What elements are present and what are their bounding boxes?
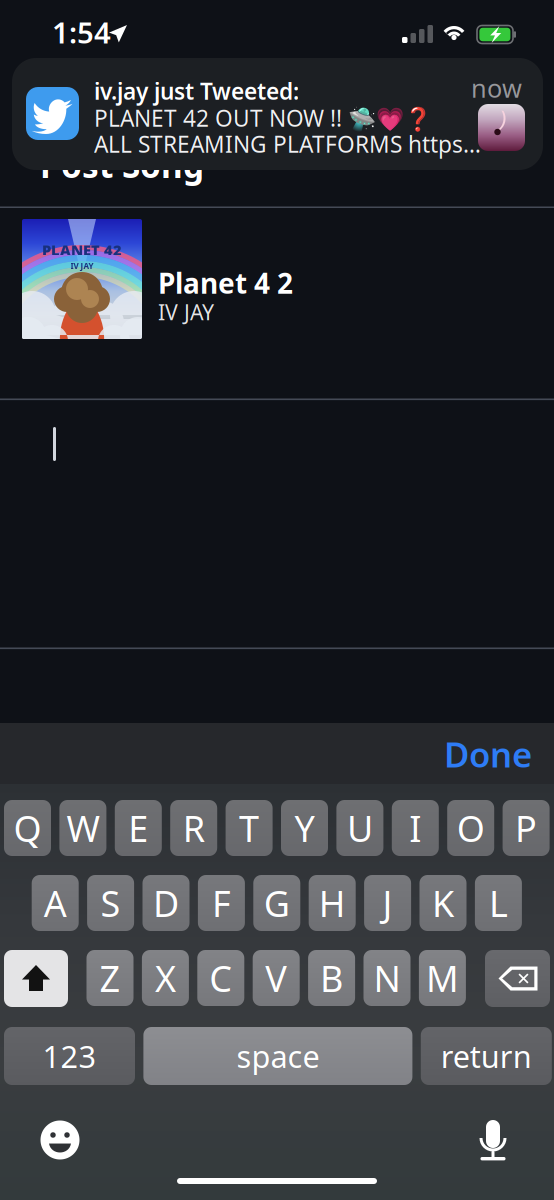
staticText: space <box>236 1036 319 1076</box>
staticText: D <box>153 879 179 927</box>
staticText: O <box>457 804 485 852</box>
button[interactable]: S <box>87 875 134 931</box>
staticText: A <box>44 879 67 927</box>
button[interactable]: L <box>475 875 522 931</box>
staticText: V <box>265 954 287 1002</box>
button[interactable]: Y <box>281 800 328 856</box>
button[interactable]: A <box>32 875 79 931</box>
button[interactable]: W <box>59 800 106 856</box>
button[interactable]: space <box>143 1027 412 1085</box>
button[interactable]: J <box>364 875 411 931</box>
staticText: E <box>128 804 148 852</box>
staticText: H <box>319 879 346 927</box>
button[interactable]: G <box>253 875 300 931</box>
staticText: M <box>426 954 459 1002</box>
button[interactable]: Delete <box>485 950 550 1007</box>
staticText: U <box>347 804 373 852</box>
staticText: iv.jay just Tweeted: <box>94 76 299 106</box>
button[interactable]: Z <box>86 950 133 1006</box>
button[interactable]: Shift <box>4 950 68 1007</box>
staticText: N <box>373 954 400 1002</box>
button[interactable]: P <box>503 800 550 856</box>
staticText: Planet 4 2 <box>158 264 293 302</box>
staticText: 123 <box>42 1036 96 1076</box>
staticText: ALL STREAMING PLATFORMS https… <box>94 129 481 159</box>
button[interactable]: M <box>419 950 466 1006</box>
button[interactable]: O <box>447 800 494 856</box>
button[interactable]: Q <box>4 800 51 856</box>
staticText: W <box>66 804 99 852</box>
button[interactable]: N <box>363 950 410 1006</box>
staticText: X <box>155 954 176 1002</box>
staticText: IV JAY <box>70 260 93 271</box>
button[interactable]: K <box>419 875 466 931</box>
staticText: Q <box>13 804 41 852</box>
button[interactable]: Emoji <box>38 1118 82 1162</box>
button[interactable]: iv.jay just Tweeted: <box>12 58 543 170</box>
staticText: L <box>489 879 508 927</box>
button[interactable]: X <box>142 950 189 1006</box>
staticText: J <box>383 879 393 927</box>
staticText: G <box>264 879 290 927</box>
staticText: Y <box>294 804 314 852</box>
button[interactable]: F <box>198 875 245 931</box>
staticText: PLANET 42 <box>42 240 122 259</box>
button[interactable]: return <box>421 1027 552 1085</box>
button[interactable]: E <box>115 800 162 856</box>
staticText: K <box>432 879 454 927</box>
button[interactable]: V <box>253 950 300 1006</box>
staticText: C <box>209 954 232 1002</box>
staticText: PLANET 42 OUT NOW !! 🛸💗❓ <box>94 103 432 133</box>
button[interactable]: 123 <box>4 1027 135 1085</box>
button[interactable]: Dictate <box>473 1118 513 1162</box>
staticText: B <box>320 954 343 1002</box>
staticText: P <box>515 804 537 852</box>
staticText: Z <box>99 954 120 1002</box>
button[interactable]: C <box>197 950 244 1006</box>
button[interactable]: U <box>336 800 383 856</box>
staticText: T <box>239 804 259 852</box>
staticText: Post Song <box>40 143 204 187</box>
button[interactable]: Done <box>440 731 536 777</box>
button[interactable]: D <box>142 875 189 931</box>
staticText: 1:54 <box>52 12 111 51</box>
button[interactable]: T <box>226 800 273 856</box>
button[interactable]: H <box>309 875 356 931</box>
staticText: IV JAY <box>158 298 214 326</box>
staticText: Done <box>444 731 532 777</box>
staticText: S <box>101 879 121 927</box>
button[interactable]: PLANET 42 <box>0 208 554 399</box>
staticText: return <box>441 1036 532 1076</box>
staticText: I <box>409 804 421 852</box>
button[interactable]: B <box>308 950 355 1006</box>
button[interactable]: I <box>392 800 439 856</box>
staticText: F <box>212 879 231 927</box>
staticText: now <box>471 71 522 105</box>
button[interactable]: R <box>170 800 217 856</box>
staticText: R <box>183 804 205 852</box>
